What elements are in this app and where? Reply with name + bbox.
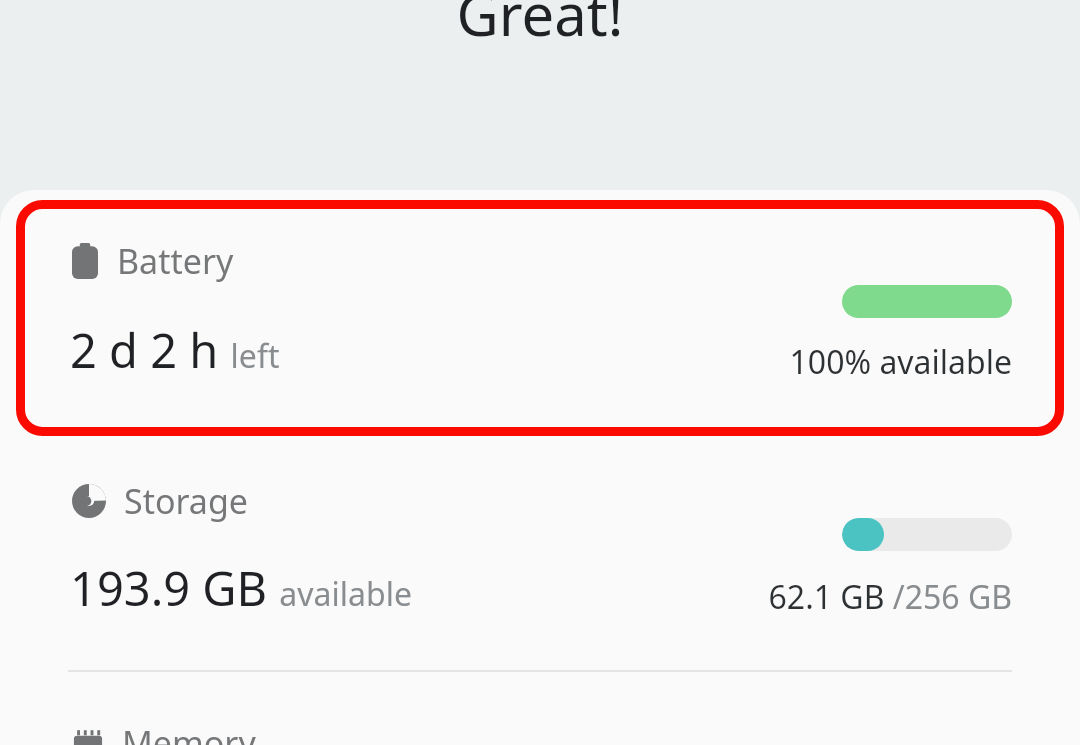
staticText: 62.1 GB /256 GB [768, 575, 1012, 619]
staticText: 2 d 2 h left [70, 318, 280, 382]
staticText: Great! [0, 0, 1080, 53]
button[interactable]: Battery [0, 190, 1080, 428]
staticText: Memory [122, 720, 256, 745]
staticText: 100% available [789, 340, 1012, 384]
button[interactable]: Storage [0, 428, 1080, 670]
staticText: Battery [117, 238, 234, 284]
other: Battery section highlight [16, 200, 1064, 436]
button[interactable]: Memory [0, 672, 1080, 745]
staticText: 193.9 GB available [70, 556, 412, 620]
staticText: Storage [124, 478, 249, 524]
